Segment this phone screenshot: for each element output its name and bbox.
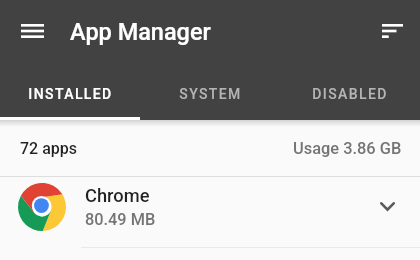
- staticText: DISABLED: [312, 86, 388, 102]
- button[interactable]: Open navigation menu: [10, 9, 54, 53]
- staticText: App Manager: [70, 18, 211, 46]
- staticText: 80.49 MB: [85, 210, 156, 229]
- staticText: Usage 3.86 GB: [293, 139, 402, 158]
- button[interactable]: Expand: [368, 187, 406, 225]
- staticText: 72 apps: [20, 139, 78, 158]
- button[interactable]: DISABLED: [280, 62, 420, 120]
- button[interactable]: Sort: [370, 9, 414, 53]
- button[interactable]: INSTALLED: [0, 62, 140, 120]
- staticText: INSTALLED: [28, 86, 113, 102]
- button[interactable]: Chrome: [0, 177, 420, 247]
- staticText: Chrome: [85, 185, 150, 206]
- staticText: SYSTEM: [179, 86, 242, 102]
- button[interactable]: SYSTEM: [140, 62, 280, 120]
